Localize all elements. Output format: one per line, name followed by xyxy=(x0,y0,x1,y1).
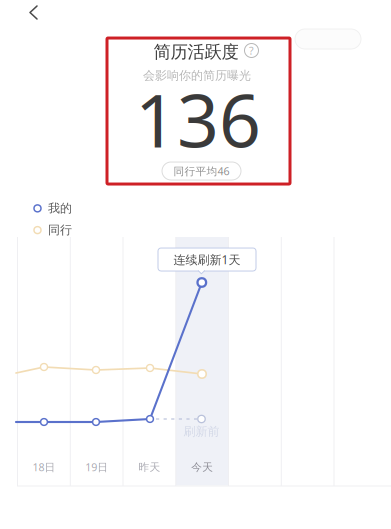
staticText: 今天 xyxy=(191,460,213,474)
staticText: ? xyxy=(249,43,254,58)
staticText: 刷新前 xyxy=(183,424,219,439)
staticText: 我的 xyxy=(48,201,72,216)
staticText: 连续刷新1天 xyxy=(173,251,240,267)
staticText: 同行 xyxy=(48,223,72,237)
staticText: 18日 xyxy=(32,460,55,474)
staticText: 昨天 xyxy=(138,460,160,474)
button[interactable]: Help xyxy=(244,43,258,57)
staticText: 简历活跃度 xyxy=(153,41,238,63)
staticText: 会影响你的简历曝光 xyxy=(143,68,251,83)
staticText: 19日 xyxy=(85,460,108,474)
button[interactable]: Back xyxy=(18,0,52,25)
staticText: 136 xyxy=(135,70,261,168)
staticText: 同行平均46 xyxy=(173,164,229,178)
